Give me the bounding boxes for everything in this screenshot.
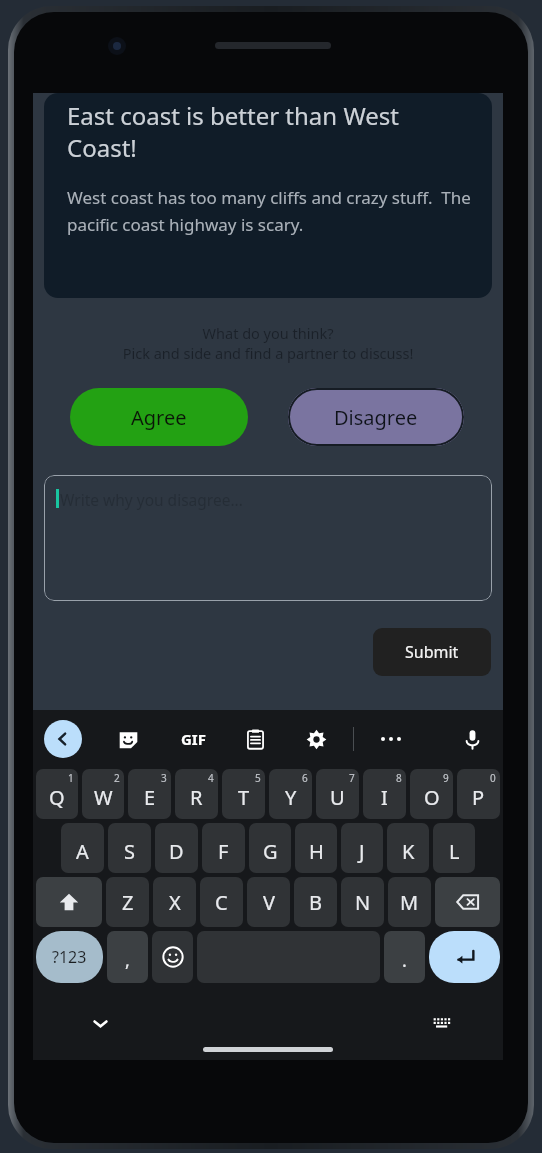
staticText: ?123 <box>52 946 87 968</box>
staticText: . <box>402 948 407 973</box>
staticText: 6 <box>302 771 308 785</box>
button[interactable]: F <box>202 823 245 873</box>
button[interactable]: W <box>82 769 124 819</box>
staticText: 4 <box>208 771 214 785</box>
button[interactable]: I <box>363 769 406 819</box>
button[interactable]: Disagree <box>288 388 464 446</box>
button[interactable]: Switch keyboard <box>425 1006 459 1040</box>
staticText: Z <box>122 889 134 916</box>
button[interactable]: L <box>433 823 475 873</box>
button[interactable]: Backspace <box>435 877 500 927</box>
button[interactable]: N <box>341 877 384 927</box>
button[interactable]: Shift <box>36 877 102 927</box>
button[interactable]: C <box>200 877 243 927</box>
staticText: L <box>449 838 460 865</box>
button[interactable]: , <box>107 931 148 983</box>
button[interactable]: Q <box>36 769 78 819</box>
staticText: 7 <box>349 771 355 785</box>
button[interactable]: Y <box>269 769 312 819</box>
staticText: B <box>309 889 322 916</box>
button[interactable]: Submit <box>373 628 491 676</box>
staticText: M <box>400 889 419 916</box>
button[interactable]: O <box>410 769 453 819</box>
staticText: S <box>124 838 135 865</box>
button[interactable]: Stickers <box>109 720 147 758</box>
staticText: What do you think? Pick and side and fin… <box>33 323 503 364</box>
button[interactable]: G <box>249 823 291 873</box>
button[interactable]: GIF <box>172 718 214 760</box>
staticText: P <box>472 784 485 811</box>
staticText: A <box>76 838 89 865</box>
button[interactable]: Agree <box>70 388 248 446</box>
staticText: East coast is better than West Coast! <box>67 99 474 164</box>
button[interactable]: East coast is better than West Coast! <box>44 93 492 298</box>
staticText: Submit <box>405 641 459 663</box>
staticText: K <box>402 838 415 865</box>
staticText: W <box>94 784 113 811</box>
staticText: R <box>190 784 203 811</box>
button[interactable]: B <box>294 877 337 927</box>
button[interactable]: A <box>61 823 104 873</box>
staticText: T <box>238 784 250 811</box>
staticText: I <box>381 784 388 811</box>
staticText: Agree <box>131 404 187 431</box>
button[interactable]: Voice input <box>453 720 491 758</box>
staticText: V <box>263 889 275 916</box>
button[interactable]: . <box>384 931 425 983</box>
staticText: C <box>215 889 228 916</box>
button[interactable]: H <box>295 823 337 873</box>
staticText: , <box>125 948 130 973</box>
button[interactable]: K <box>387 823 429 873</box>
button[interactable]: D <box>155 823 198 873</box>
staticText: 2 <box>114 771 120 785</box>
staticText: Q <box>49 784 65 811</box>
button[interactable]: V <box>247 877 290 927</box>
button[interactable]: M <box>388 877 431 927</box>
staticText: 8 <box>396 771 402 785</box>
staticText: 11:54 <box>47 98 78 114</box>
button[interactable]: ?123 <box>36 931 103 983</box>
staticText: X <box>169 889 181 916</box>
button[interactable]: S <box>108 823 151 873</box>
staticText: E <box>144 784 156 811</box>
button[interactable]: X <box>153 877 196 927</box>
button[interactable]: E <box>128 769 171 819</box>
staticText: F <box>218 838 229 865</box>
staticText: O <box>424 784 440 811</box>
button[interactable]: Settings <box>297 720 335 758</box>
button[interactable]: J <box>341 823 383 873</box>
button[interactable]: Enter <box>429 931 500 983</box>
staticText: D <box>169 838 184 865</box>
button[interactable]: T <box>222 769 265 819</box>
staticText: U <box>330 784 345 811</box>
staticText: 3 <box>161 771 167 785</box>
button[interactable]: R <box>175 769 218 819</box>
button[interactable]: Hide keyboard <box>83 1006 117 1040</box>
button[interactable]: Write why you disagree... <box>44 475 492 601</box>
button[interactable]: Clipboard <box>236 720 274 758</box>
staticText: 1 <box>68 771 74 785</box>
button[interactable]: Back <box>44 720 82 758</box>
staticText: GIF <box>181 729 206 749</box>
staticText: 0 <box>490 771 496 785</box>
button[interactable]: Emoji <box>152 931 193 983</box>
staticText: 9 <box>443 771 449 785</box>
button[interactable]: P <box>457 769 500 819</box>
staticText: West coast has too many cliffs and crazy… <box>67 186 474 236</box>
staticText: Disagree <box>334 404 418 431</box>
staticText: H <box>309 838 324 865</box>
button[interactable]: More options <box>372 720 410 758</box>
button[interactable]: Z <box>106 877 149 927</box>
staticText: 5 <box>255 771 261 785</box>
staticText: Write why you disagree... <box>60 489 243 510</box>
staticText: N <box>355 889 371 916</box>
staticText: Y <box>285 784 297 811</box>
button[interactable]: U <box>316 769 359 819</box>
staticText: J <box>359 838 365 865</box>
staticText: G <box>263 838 278 865</box>
